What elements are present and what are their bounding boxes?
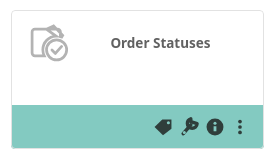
button[interactable]: Info — [203, 115, 227, 139]
button[interactable]: Labels — [151, 115, 175, 139]
button[interactable]: Order Statuses — [11, 10, 264, 149]
button[interactable]: More options — [230, 117, 250, 137]
button[interactable]: Settings — [177, 115, 201, 139]
staticText: Order Statuses — [110, 34, 211, 52]
